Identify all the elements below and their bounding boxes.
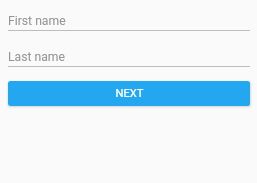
staticText: First name	[8, 14, 66, 28]
button[interactable]: First name	[8, 1, 250, 31]
staticText: Last name	[8, 50, 66, 64]
button[interactable]: NEXT	[8, 81, 250, 106]
button[interactable]: Last name	[8, 37, 250, 67]
staticText: NEXT	[115, 87, 144, 100]
